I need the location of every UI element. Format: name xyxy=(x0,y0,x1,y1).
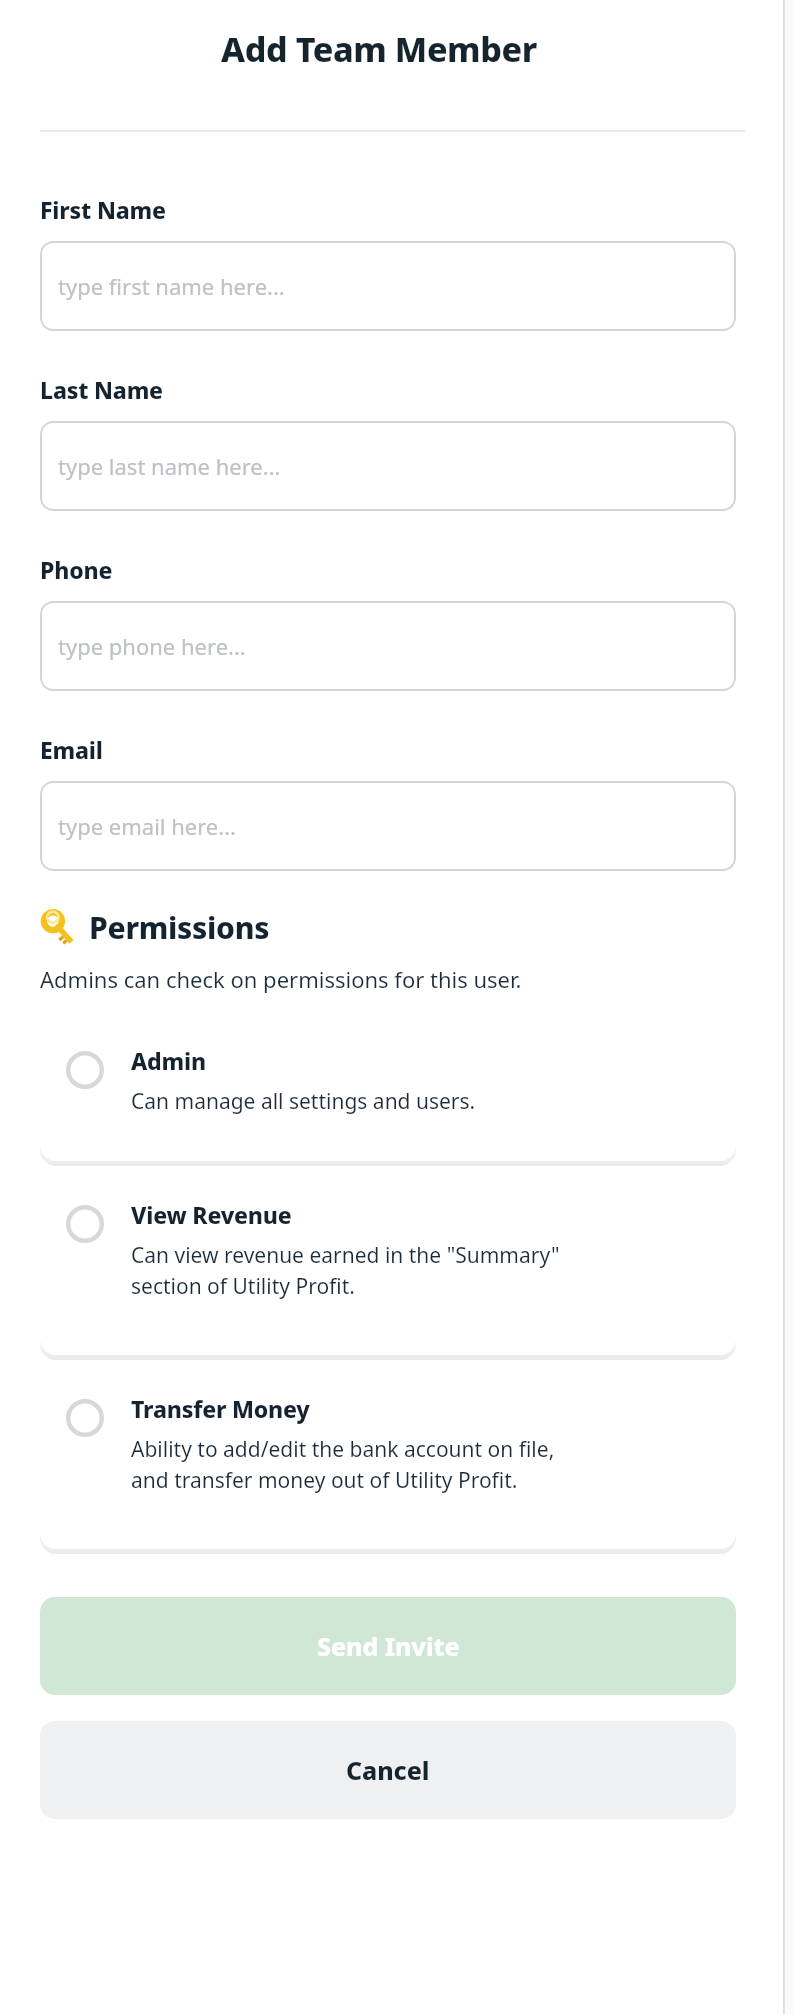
staticText: View Revenue xyxy=(131,1199,292,1230)
staticText: First Name xyxy=(40,194,166,225)
staticText: Email xyxy=(40,734,103,765)
staticText: type phone here... xyxy=(58,631,246,661)
button[interactable]: Admin xyxy=(40,1023,736,1161)
button[interactable]: type phone here... xyxy=(40,601,736,691)
staticText: Ability to add/edit the bank account on … xyxy=(131,1435,555,1494)
staticText: Admin xyxy=(131,1045,206,1076)
staticText: Transfer Money xyxy=(131,1393,310,1424)
staticText: Can manage all settings and users. xyxy=(131,1087,476,1116)
staticText: Cancel xyxy=(346,1753,430,1787)
button[interactable]: Cancel xyxy=(40,1721,736,1819)
staticText: Can view revenue earned in the "Summary"… xyxy=(131,1241,560,1300)
staticText: Last Name xyxy=(40,374,163,405)
button[interactable]: type last name here... xyxy=(40,421,736,511)
staticText: type email here... xyxy=(58,811,236,841)
button[interactable]: Transfer Money xyxy=(40,1371,736,1549)
button[interactable]: type email here... xyxy=(40,781,736,871)
staticText: Phone xyxy=(40,554,113,585)
staticText: Permissions xyxy=(89,907,270,948)
button[interactable]: type first name here... xyxy=(40,241,736,331)
staticText: type last name here... xyxy=(58,451,281,481)
staticText: type first name here... xyxy=(58,271,285,301)
button[interactable]: View Revenue xyxy=(40,1177,736,1355)
staticText: Admins can check on permissions for this… xyxy=(40,964,522,994)
staticText: Add Team Member xyxy=(221,26,537,72)
button[interactable]: Send Invite xyxy=(40,1597,736,1695)
staticText: Send Invite xyxy=(317,1629,460,1663)
